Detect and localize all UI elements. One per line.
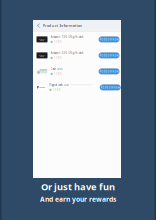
staticText: And earn your rewards (40, 195, 116, 204)
staticText: 1185 (54, 72, 62, 76)
staticText: amazon (39, 38, 45, 40)
button[interactable]: Redeem now (98, 68, 119, 74)
staticText: Cash out (50, 67, 62, 71)
staticText: Redeem now (99, 70, 118, 73)
staticText: Redeem now (101, 86, 120, 89)
staticText: Amazon 100 US gift card (50, 35, 83, 39)
staticText: PayPal (40, 86, 45, 88)
button[interactable]: Redeem now (100, 84, 121, 90)
staticText: Product Information (42, 23, 82, 28)
staticText: 1185 (54, 56, 62, 60)
staticText: Redeem now (99, 54, 118, 57)
staticText: 1230 (53, 88, 61, 92)
button[interactable]: Back (37, 23, 40, 28)
button[interactable]: Redeem now (98, 52, 119, 58)
staticText: Amazon 200 US gift card (50, 51, 83, 55)
staticText: 1185 (54, 40, 62, 44)
button[interactable]: Redeem now (98, 36, 119, 42)
staticText: Redeem now (99, 38, 118, 41)
staticText: amazon (39, 54, 45, 56)
staticText: Or just have fun (41, 180, 115, 193)
staticText: Paypal cash out (49, 83, 69, 87)
